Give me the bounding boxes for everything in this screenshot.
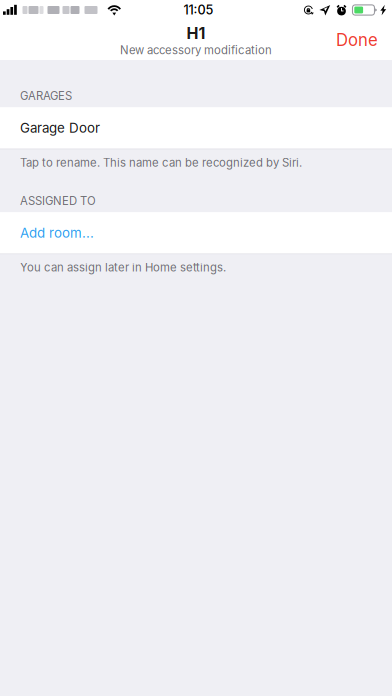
button[interactable]: Garage Door (0, 107, 392, 149)
staticText: Garage Door (20, 120, 100, 136)
staticText: 11:05 (183, 2, 213, 18)
staticText: GARAGES (20, 89, 72, 103)
staticText: Done (336, 30, 378, 50)
staticText: H1 (186, 24, 205, 43)
button[interactable]: Add room... (0, 212, 392, 254)
staticText: ASSIGNED TO (20, 194, 96, 208)
staticText: Add room... (20, 225, 94, 241)
staticText: New accessory modification (120, 43, 272, 57)
staticText: You can assign later in Home settings. (20, 261, 226, 274)
staticText: Tap to rename. This name can be recogniz… (20, 156, 302, 169)
button[interactable]: Done (320, 20, 392, 60)
